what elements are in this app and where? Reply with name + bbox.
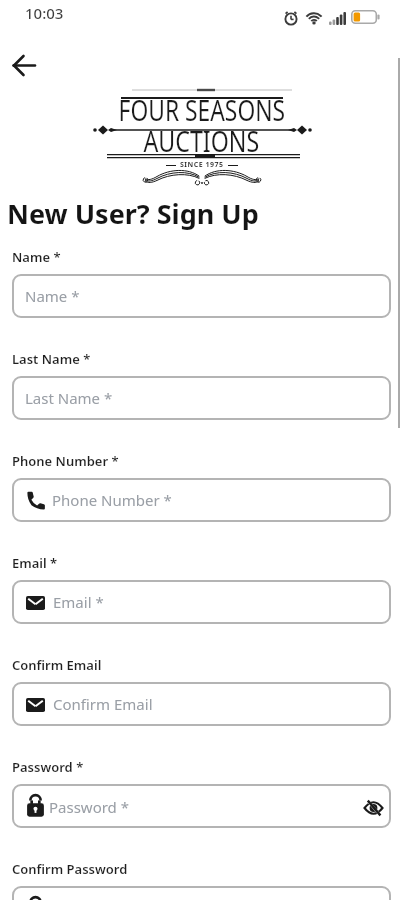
button[interactable]: Phone Number * — [12, 478, 391, 522]
staticText: New User? Sign Up — [7, 195, 259, 232]
button[interactable]: Name * — [12, 274, 391, 318]
button[interactable]: Email * — [12, 580, 391, 624]
staticText: 10:03 — [25, 3, 64, 23]
staticText: Email * — [12, 554, 58, 572]
button[interactable]: Confirm Password — [12, 886, 391, 900]
staticText: Phone Number * — [52, 490, 172, 510]
button[interactable]: Last Name * — [12, 376, 391, 420]
button[interactable] — [363, 799, 385, 817]
staticText: Phone Number * — [12, 452, 119, 470]
button[interactable] — [8, 49, 40, 81]
staticText: Confirm Email — [53, 694, 153, 714]
staticText: Last Name * — [12, 350, 91, 368]
staticText: Email * — [53, 592, 104, 612]
staticText: Password * — [12, 758, 84, 776]
staticText: Confirm Password — [12, 860, 128, 878]
staticText: Last Name * — [25, 388, 113, 408]
staticText: Name * — [25, 286, 80, 306]
staticText: FOUR SEASONS — [119, 90, 285, 129]
staticText: SINCE 1975 — [180, 160, 224, 170]
button[interactable]: Password * — [12, 784, 391, 828]
staticText: AUCTIONS — [143, 121, 259, 160]
staticText: Name * — [12, 248, 61, 266]
staticText: Password * — [49, 797, 130, 817]
button[interactable]: Confirm Email — [12, 682, 391, 726]
staticText: Confirm Email — [12, 656, 102, 674]
